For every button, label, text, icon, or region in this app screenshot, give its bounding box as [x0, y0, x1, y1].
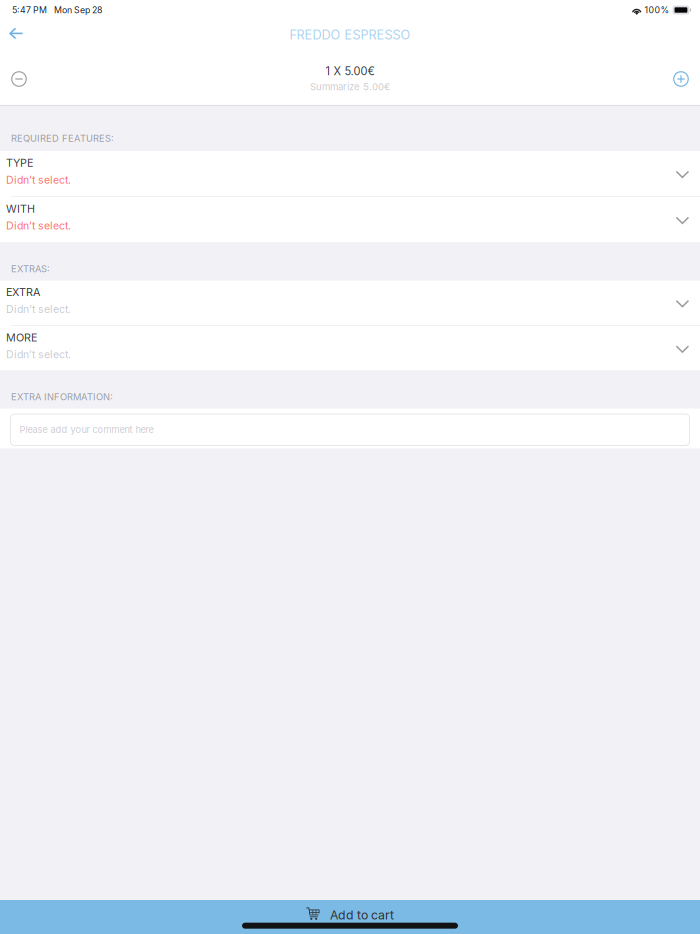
staticText: Mon Sep 28: [54, 5, 102, 15]
staticText: MORE: [6, 331, 37, 344]
button[interactable]: Back: [0, 20, 43, 53]
staticText: EXTRA INFORMATION:: [11, 391, 113, 402]
button[interactable]: Add to cart: [0, 900, 700, 934]
staticText: Didn’t select.: [6, 348, 71, 361]
staticText: Didn’t select.: [6, 173, 71, 186]
button[interactable]: Decrease quantity: [0, 60, 38, 98]
staticText: Add to cart: [330, 908, 394, 922]
staticText: Summarize 5.00€: [310, 81, 390, 92]
staticText: 100%: [645, 5, 670, 15]
button[interactable]: WITH: [0, 197, 700, 242]
staticText: EXTRA: [6, 286, 40, 299]
staticText: WITH: [6, 202, 35, 215]
staticText: Please add your comment here: [19, 424, 153, 435]
button[interactable]: Please add your comment here: [0, 408, 700, 448]
staticText: Didn’t select.: [6, 219, 71, 232]
staticText: Didn’t select.: [6, 303, 71, 315]
button[interactable]: MORE: [0, 326, 700, 370]
staticText: 5:47 PM: [12, 5, 47, 15]
staticText: EXTRAS:: [11, 263, 50, 274]
button[interactable]: EXTRA: [0, 280, 700, 325]
staticText: FREDDO ESPRESSO: [289, 27, 410, 43]
button[interactable]: TYPE: [0, 151, 700, 196]
button[interactable]: Increase quantity: [662, 60, 700, 98]
staticText: 1 X 5.00€: [325, 64, 374, 78]
staticText: REQUIRED FEATURES:: [11, 133, 114, 144]
staticText: TYPE: [6, 156, 33, 169]
